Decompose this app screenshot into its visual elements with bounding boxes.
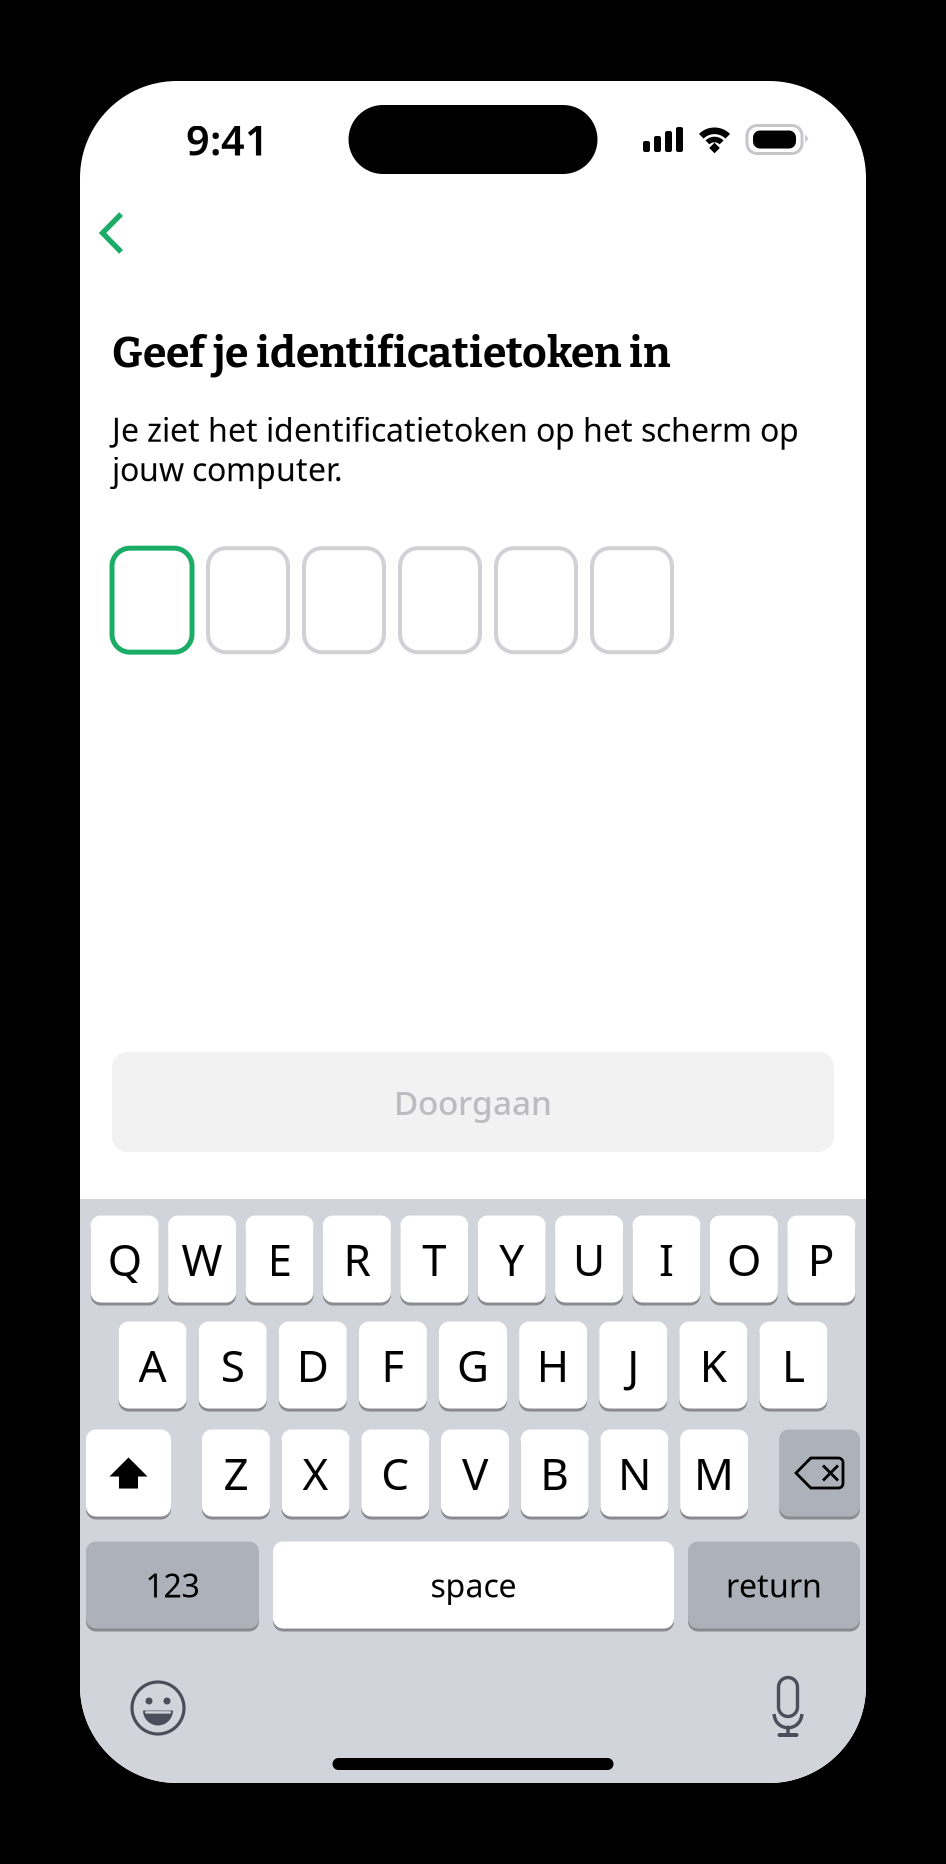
staticText: C	[381, 1444, 409, 1502]
staticText: K	[700, 1336, 727, 1394]
button[interactable]: N	[600, 1428, 668, 1518]
staticText: N	[618, 1444, 651, 1502]
button[interactable]: O	[710, 1214, 778, 1304]
staticText: O	[727, 1230, 761, 1288]
staticText: J	[627, 1336, 639, 1394]
button[interactable]: G	[439, 1320, 507, 1410]
button[interactable]: P	[787, 1214, 855, 1304]
staticText: F	[381, 1336, 404, 1394]
button[interactable]: X	[282, 1428, 350, 1518]
staticText: G	[457, 1336, 489, 1394]
staticText: U	[573, 1230, 605, 1288]
staticText: 9:41	[186, 112, 269, 167]
staticText: I	[659, 1230, 674, 1288]
staticText: T	[422, 1230, 446, 1288]
staticText: A	[139, 1336, 167, 1394]
staticText: P	[808, 1230, 835, 1288]
button[interactable]: return	[688, 1540, 860, 1630]
staticText: X	[303, 1444, 329, 1502]
staticText: B	[540, 1444, 569, 1502]
staticText: S	[221, 1336, 245, 1394]
button[interactable]: U	[555, 1214, 623, 1304]
staticText: 123	[145, 1564, 199, 1606]
button[interactable]: J	[599, 1320, 667, 1410]
button[interactable]: R	[323, 1214, 391, 1304]
button[interactable]: W	[168, 1214, 236, 1304]
staticText: Geef je identificatietoken in	[112, 327, 670, 378]
staticText: E	[267, 1230, 291, 1288]
staticText: return	[726, 1564, 822, 1606]
staticText: Doorgaan	[394, 1080, 552, 1124]
button[interactable]: Y	[478, 1214, 546, 1304]
button[interactable]: Z	[202, 1428, 270, 1518]
staticText: Z	[223, 1444, 248, 1502]
button[interactable]: I	[632, 1214, 700, 1304]
staticText: R	[343, 1230, 370, 1288]
button[interactable]: B	[521, 1428, 589, 1518]
staticText: Je ziet het identificatietoken op het sc…	[112, 408, 799, 490]
button[interactable]: D	[279, 1320, 347, 1410]
button[interactable]: space	[273, 1540, 674, 1630]
button[interactable]: Dictate	[743, 1669, 833, 1747]
button[interactable]: Doorgaan	[112, 1052, 834, 1152]
staticText: Q	[108, 1230, 142, 1288]
button[interactable]: T	[400, 1214, 468, 1304]
staticText: H	[537, 1336, 570, 1394]
staticText: M	[694, 1444, 734, 1502]
button[interactable]: Q	[91, 1214, 159, 1304]
button[interactable]: L	[759, 1320, 827, 1410]
button[interactable]: C	[361, 1428, 429, 1518]
staticText: V	[462, 1444, 488, 1502]
button[interactable]: Back	[81, 192, 149, 278]
staticText: W	[182, 1230, 223, 1288]
staticText: L	[782, 1336, 805, 1394]
button[interactable]: F	[359, 1320, 427, 1410]
staticText: space	[430, 1564, 516, 1606]
button[interactable]: 123	[86, 1540, 259, 1630]
staticText: Y	[499, 1230, 524, 1288]
button[interactable]: A	[119, 1320, 187, 1410]
button[interactable]: S	[199, 1320, 267, 1410]
button[interactable]: Shift	[86, 1428, 171, 1518]
button[interactable]: E	[245, 1214, 313, 1304]
button[interactable]: Delete	[779, 1428, 860, 1518]
button[interactable]: Emoji keyboard	[113, 1669, 203, 1747]
button[interactable]: H	[519, 1320, 587, 1410]
staticText: D	[297, 1336, 329, 1394]
button[interactable]: M	[680, 1428, 748, 1518]
button[interactable]: V	[441, 1428, 509, 1518]
button[interactable]: K	[679, 1320, 747, 1410]
